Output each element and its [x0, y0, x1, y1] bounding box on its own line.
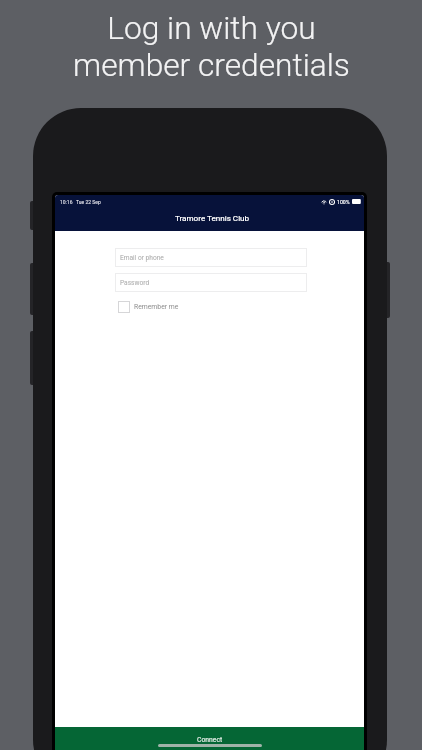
staticText: Password: [120, 279, 150, 287]
staticText: Email or phone: [120, 254, 164, 262]
staticText: Remember me: [134, 303, 179, 311]
staticText: member credentials: [73, 47, 350, 84]
staticText: Log in with you: [107, 10, 316, 47]
staticText: Tue 22 Sep: [76, 199, 101, 205]
button[interactable]: Connect: [55, 727, 364, 750]
button[interactable]: Tramore Tennis Club app bar: [55, 195, 364, 231]
staticText: Connect: [197, 736, 223, 744]
staticText: 10:16: [60, 199, 73, 205]
staticText: Tramore Tennis Club: [175, 213, 250, 222]
staticText: 100%: [337, 199, 350, 205]
button[interactable]: Email or phone: [115, 248, 307, 267]
button[interactable]: Remember me: [118, 301, 179, 313]
button[interactable]: Password: [115, 273, 307, 292]
